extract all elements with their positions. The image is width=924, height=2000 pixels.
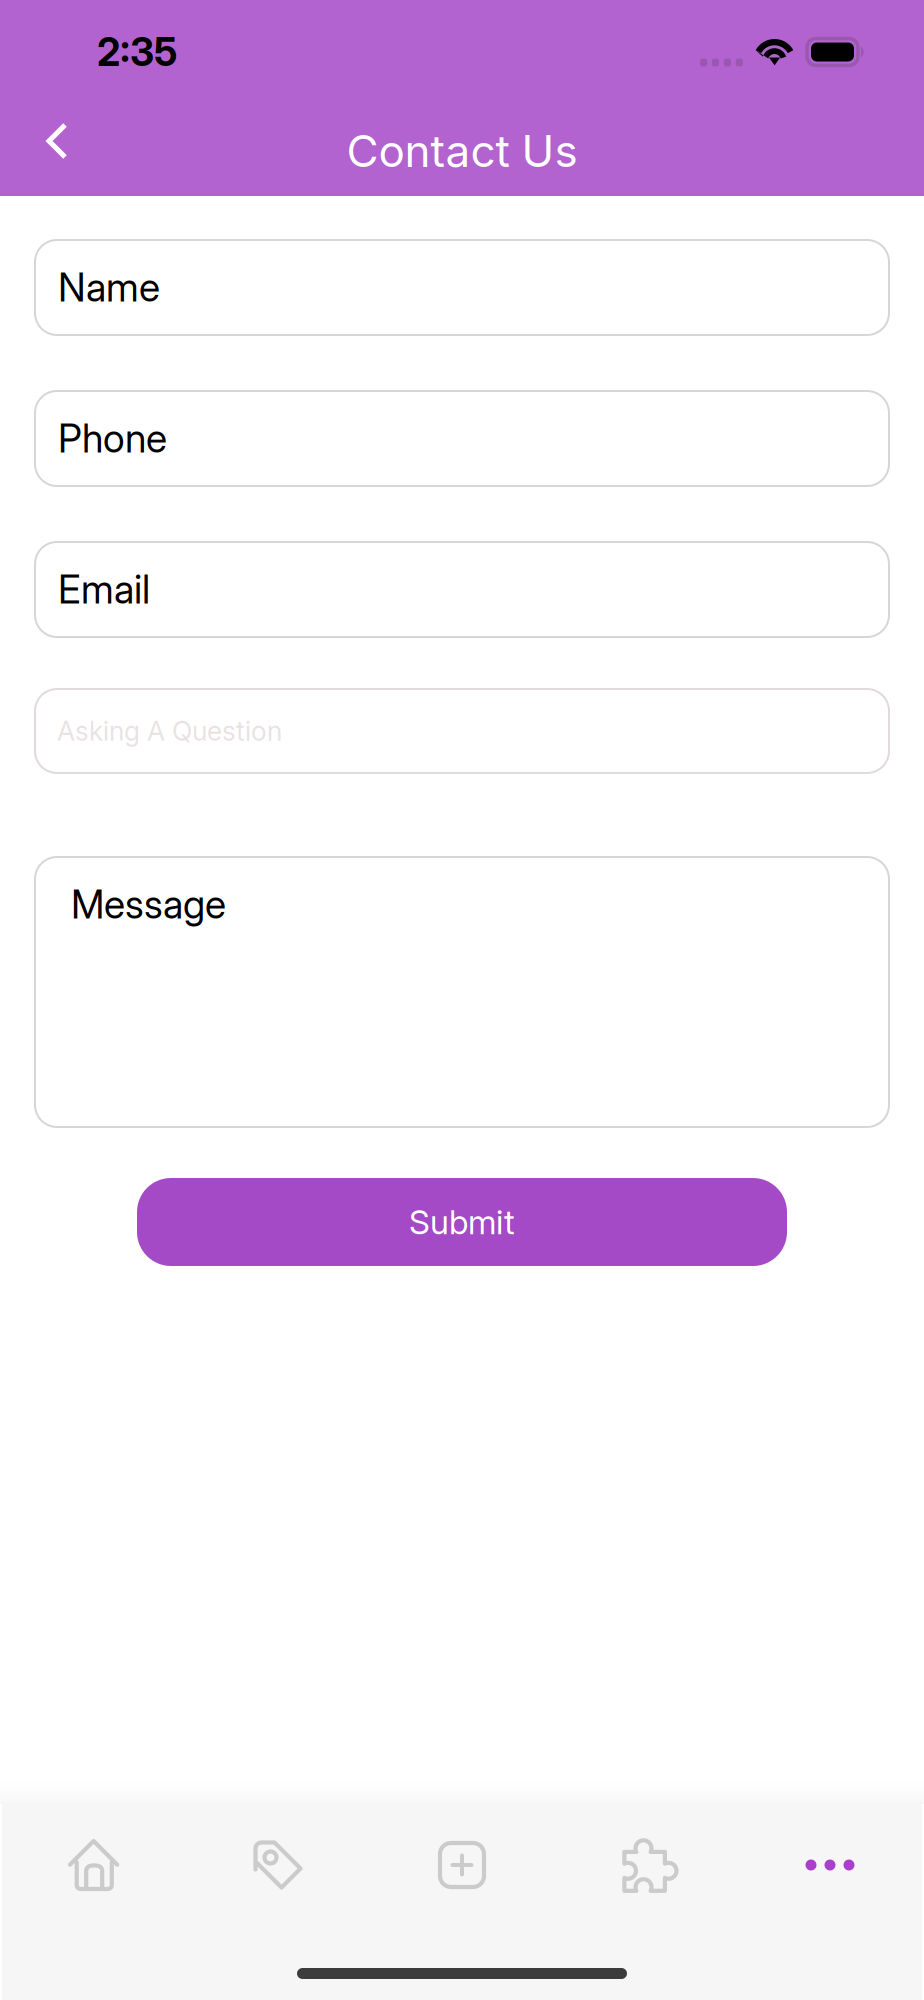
staticText: Contact Us bbox=[346, 124, 577, 178]
button[interactable]: More bbox=[738, 1835, 922, 1895]
button[interactable]: Asking A Question bbox=[35, 689, 889, 773]
staticText: Asking A Question bbox=[57, 715, 282, 747]
staticText: Submit bbox=[409, 1202, 515, 1242]
button[interactable]: Back bbox=[0, 102, 100, 180]
button[interactable]: Add bbox=[370, 1835, 554, 1895]
button[interactable]: Message bbox=[35, 857, 889, 1127]
staticText: Phone bbox=[58, 415, 167, 462]
staticText: Name bbox=[58, 264, 160, 311]
button[interactable]: Phone bbox=[35, 391, 889, 486]
staticText: Email bbox=[58, 566, 150, 613]
button[interactable]: Name bbox=[35, 240, 889, 335]
button[interactable]: Email bbox=[35, 542, 889, 637]
button[interactable]: Home bbox=[2, 1835, 186, 1895]
staticText: Message bbox=[71, 881, 226, 928]
button[interactable]: Tags bbox=[186, 1835, 370, 1895]
button[interactable]: Extensions bbox=[554, 1835, 738, 1895]
staticText: 2:35 bbox=[97, 29, 177, 75]
button[interactable]: Submit bbox=[137, 1178, 787, 1266]
